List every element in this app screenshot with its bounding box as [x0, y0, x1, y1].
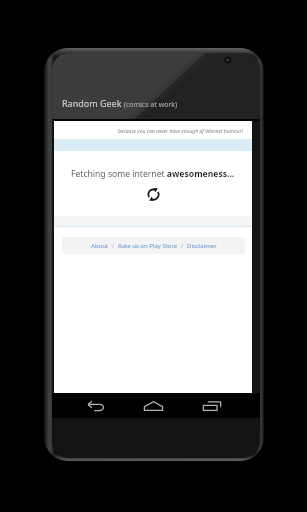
staticText: Random Geek (comics at work) [62, 97, 178, 109]
staticText: Disclaimer [187, 242, 217, 250]
button[interactable]: Recent apps [183, 393, 241, 418]
button[interactable]: About [91, 242, 109, 250]
staticText: Rate us on Play Store [118, 242, 178, 250]
staticText: / [112, 242, 115, 250]
button[interactable]: Random Geek (comics at work) [52, 91, 260, 115]
staticText: / [181, 242, 184, 250]
staticText: because you can never have enough of int… [118, 128, 244, 135]
button[interactable]: Back [67, 393, 124, 418]
staticText: Fetching some internet awesomeness... [71, 168, 235, 180]
button[interactable]: Rate us on Play Store [118, 242, 178, 250]
staticText: About [91, 242, 109, 250]
button[interactable]: Disclaimer [187, 242, 217, 250]
button[interactable]: Home [125, 393, 182, 418]
